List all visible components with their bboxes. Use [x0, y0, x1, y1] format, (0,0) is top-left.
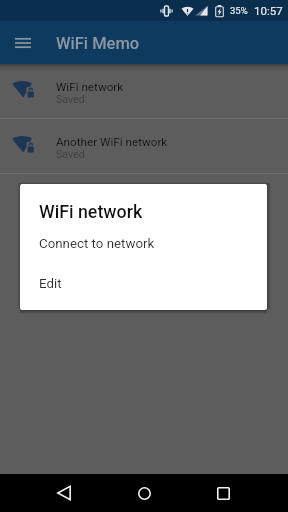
- button[interactable]: WiFi network: [0, 64, 288, 118]
- button[interactable]: Connect to network: [20, 227, 267, 261]
- button[interactable]: Open navigation drawer: [7, 27, 39, 59]
- button[interactable]: Another WiFi network: [0, 119, 288, 173]
- button[interactable]: Recent apps: [199, 474, 247, 512]
- button[interactable]: Back: [40, 474, 88, 512]
- staticText: Another WiFi network: [56, 135, 168, 149]
- button[interactable]: Edit: [20, 267, 267, 301]
- staticText: 10:57: [254, 4, 283, 17]
- staticText: WiFi network: [39, 201, 143, 222]
- staticText: 35%: [230, 5, 248, 16]
- staticText: Connect to network: [39, 236, 155, 252]
- staticText: Saved: [56, 93, 85, 105]
- staticText: WiFi Memo: [56, 34, 140, 53]
- staticText: Edit: [39, 276, 62, 292]
- button[interactable]: Home: [120, 474, 168, 512]
- staticText: WiFi network: [56, 80, 124, 94]
- staticText: Saved: [56, 148, 85, 160]
